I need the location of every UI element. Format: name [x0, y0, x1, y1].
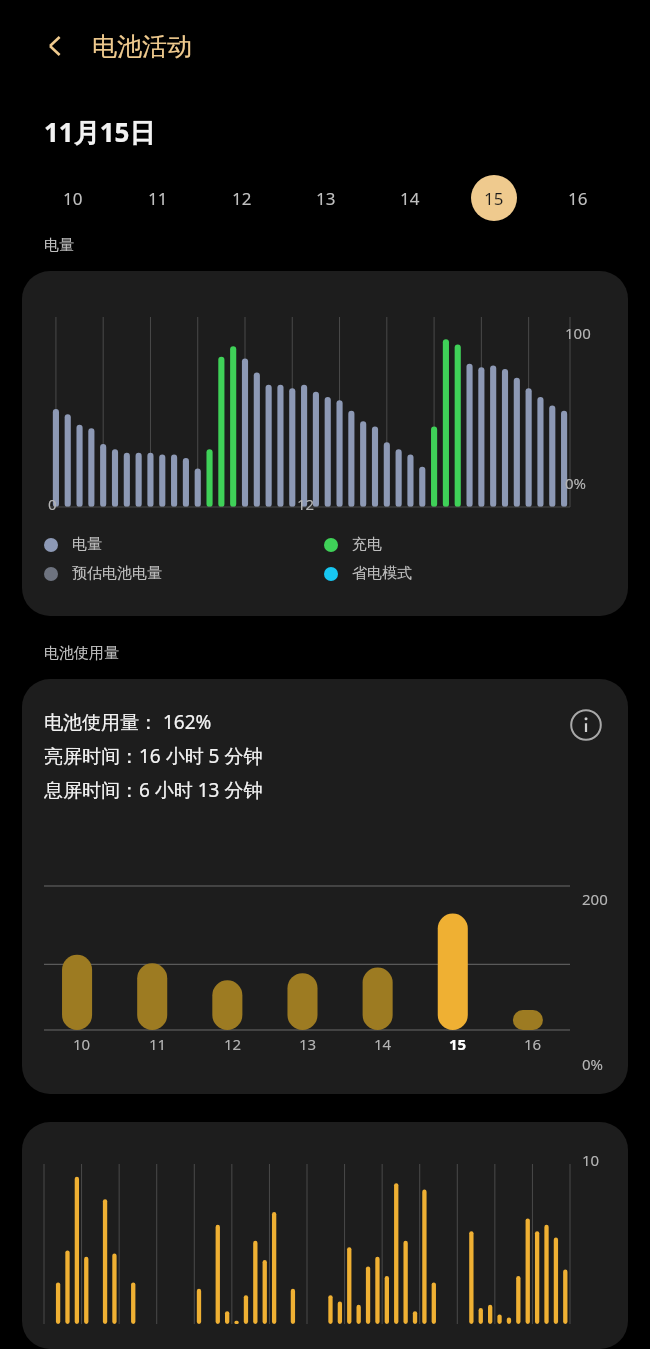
staticText: 16 [524, 1034, 542, 1054]
staticText: 电池使用量： 162% [44, 709, 212, 735]
button[interactable]: Information [562, 701, 610, 749]
button[interactable]: 电池使用量： 162% [22, 679, 628, 1094]
staticText: 12 [232, 187, 252, 210]
staticText: 息屏时间：6 小时 13 分钟 [44, 777, 263, 803]
staticText: 14 [400, 187, 420, 210]
staticText: 0% [582, 1054, 604, 1074]
button[interactable]: 100 [22, 271, 628, 616]
staticText: 0 [48, 494, 57, 514]
button[interactable]: Back [34, 24, 78, 68]
staticText: 12 [224, 1034, 242, 1054]
staticText: 充电 [352, 535, 382, 554]
staticText: 10 [582, 1150, 600, 1170]
button[interactable]: 11 [115, 170, 200, 226]
staticText: 100 [565, 323, 591, 343]
staticText: 10 [73, 1034, 91, 1054]
staticText: 电量 [72, 535, 102, 554]
staticText: 11月15日 [44, 114, 156, 150]
staticText: 200 [582, 889, 608, 909]
button[interactable]: 15 [452, 170, 536, 226]
staticText: 11 [149, 1034, 167, 1054]
staticText: 亮屏时间：16 小时 5 分钟 [44, 743, 263, 769]
staticText: 13 [299, 1034, 317, 1054]
button[interactable]: 13 [284, 170, 368, 226]
staticText: 16 [568, 187, 588, 210]
staticText: 12 [297, 494, 315, 514]
staticText: 15 [449, 1034, 467, 1054]
staticText: 预估电池电量 [72, 564, 162, 583]
staticText: 14 [374, 1034, 392, 1054]
button[interactable]: 10 [30, 170, 115, 226]
staticText: 0% [565, 473, 587, 493]
staticText: 电池使用量 [44, 644, 119, 663]
staticText: 15 [484, 187, 504, 210]
button[interactable]: 10 [22, 1122, 628, 1349]
button[interactable]: 12 [200, 170, 284, 226]
button[interactable]: 16 [536, 170, 620, 226]
staticText: 10 [63, 187, 83, 210]
staticText: 13 [316, 187, 336, 210]
staticText: 11 [148, 187, 168, 210]
staticText: 电量 [44, 236, 74, 255]
staticText: 电池活动 [92, 31, 192, 62]
staticText: 省电模式 [352, 564, 412, 583]
button[interactable]: 14 [368, 170, 452, 226]
